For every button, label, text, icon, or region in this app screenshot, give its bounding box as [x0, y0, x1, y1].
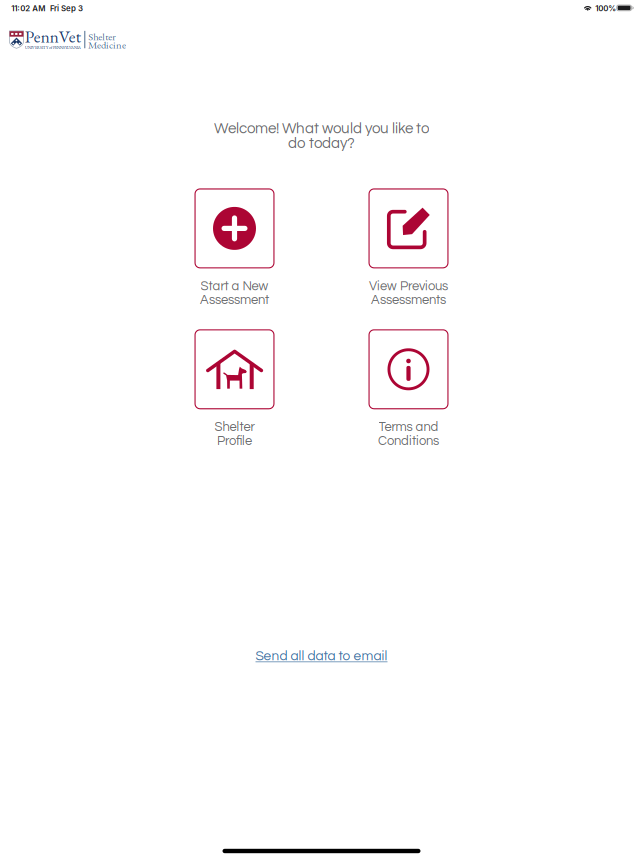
staticText: Assessments	[371, 293, 446, 307]
staticText: do today?	[288, 136, 355, 151]
staticText: Shelter	[88, 30, 116, 43]
staticText: 100%	[595, 4, 616, 13]
button[interactable]: Send all data to email	[255, 649, 387, 663]
staticText: Send all data to email	[255, 649, 387, 663]
staticText: Conditions	[378, 434, 439, 448]
staticText: Assessment	[200, 293, 269, 307]
staticText: UNIVERSITY of PENNSYLVANIA	[25, 45, 81, 50]
staticText: Medicine	[88, 38, 126, 52]
staticText: 11:02 AM	[11, 4, 45, 13]
staticText: Fri Sep 3	[50, 4, 83, 13]
staticText: View Previous	[369, 280, 448, 293]
staticText: Terms and	[378, 420, 438, 434]
staticText: Start a New	[200, 280, 268, 293]
staticText: Profile	[217, 434, 252, 448]
button[interactable]: Shelter	[159, 329, 309, 451]
button[interactable]: View Previous	[333, 188, 483, 310]
button[interactable]: Terms and	[333, 329, 483, 451]
staticText: Shelter	[214, 420, 254, 434]
button[interactable]: Start a New	[159, 188, 309, 310]
staticText: PennVet	[25, 25, 81, 48]
staticText: Welcome! What would you like to	[214, 121, 429, 136]
